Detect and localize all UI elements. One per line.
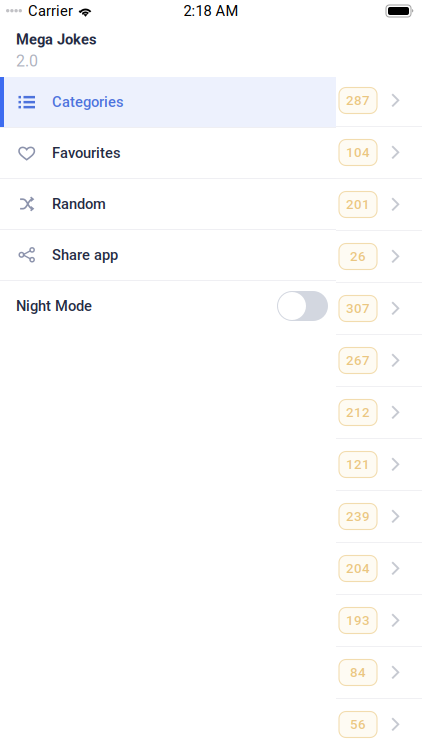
staticText: 287: [346, 93, 370, 108]
staticText: 2:18 AM: [183, 2, 238, 20]
staticText: 239: [346, 509, 370, 524]
staticText: 84: [350, 665, 366, 680]
staticText: Random: [52, 195, 106, 213]
staticText: 193: [346, 613, 370, 628]
button[interactable]: Categories: [0, 77, 336, 127]
staticText: Night Mode: [16, 297, 92, 315]
staticText: 2.0: [16, 52, 38, 70]
staticText: 267: [346, 353, 370, 368]
staticText: Carrier: [28, 2, 73, 20]
button[interactable]: Share app: [0, 230, 336, 280]
staticText: Favourites: [52, 144, 121, 162]
staticText: 204: [346, 561, 370, 576]
staticText: 104: [346, 145, 370, 160]
staticText: 307: [346, 301, 370, 316]
staticText: 26: [350, 249, 366, 264]
staticText: 56: [350, 717, 366, 732]
button[interactable]: Favourites: [0, 128, 336, 178]
staticText: 212: [346, 405, 370, 420]
button[interactable]: Night Mode: [277, 291, 328, 321]
staticText: 201: [346, 197, 370, 212]
button[interactable]: Random: [0, 179, 336, 229]
staticText: Categories: [52, 93, 124, 111]
staticText: Mega Jokes: [16, 31, 97, 48]
staticText: 121: [346, 457, 370, 472]
staticText: Share app: [52, 246, 118, 264]
